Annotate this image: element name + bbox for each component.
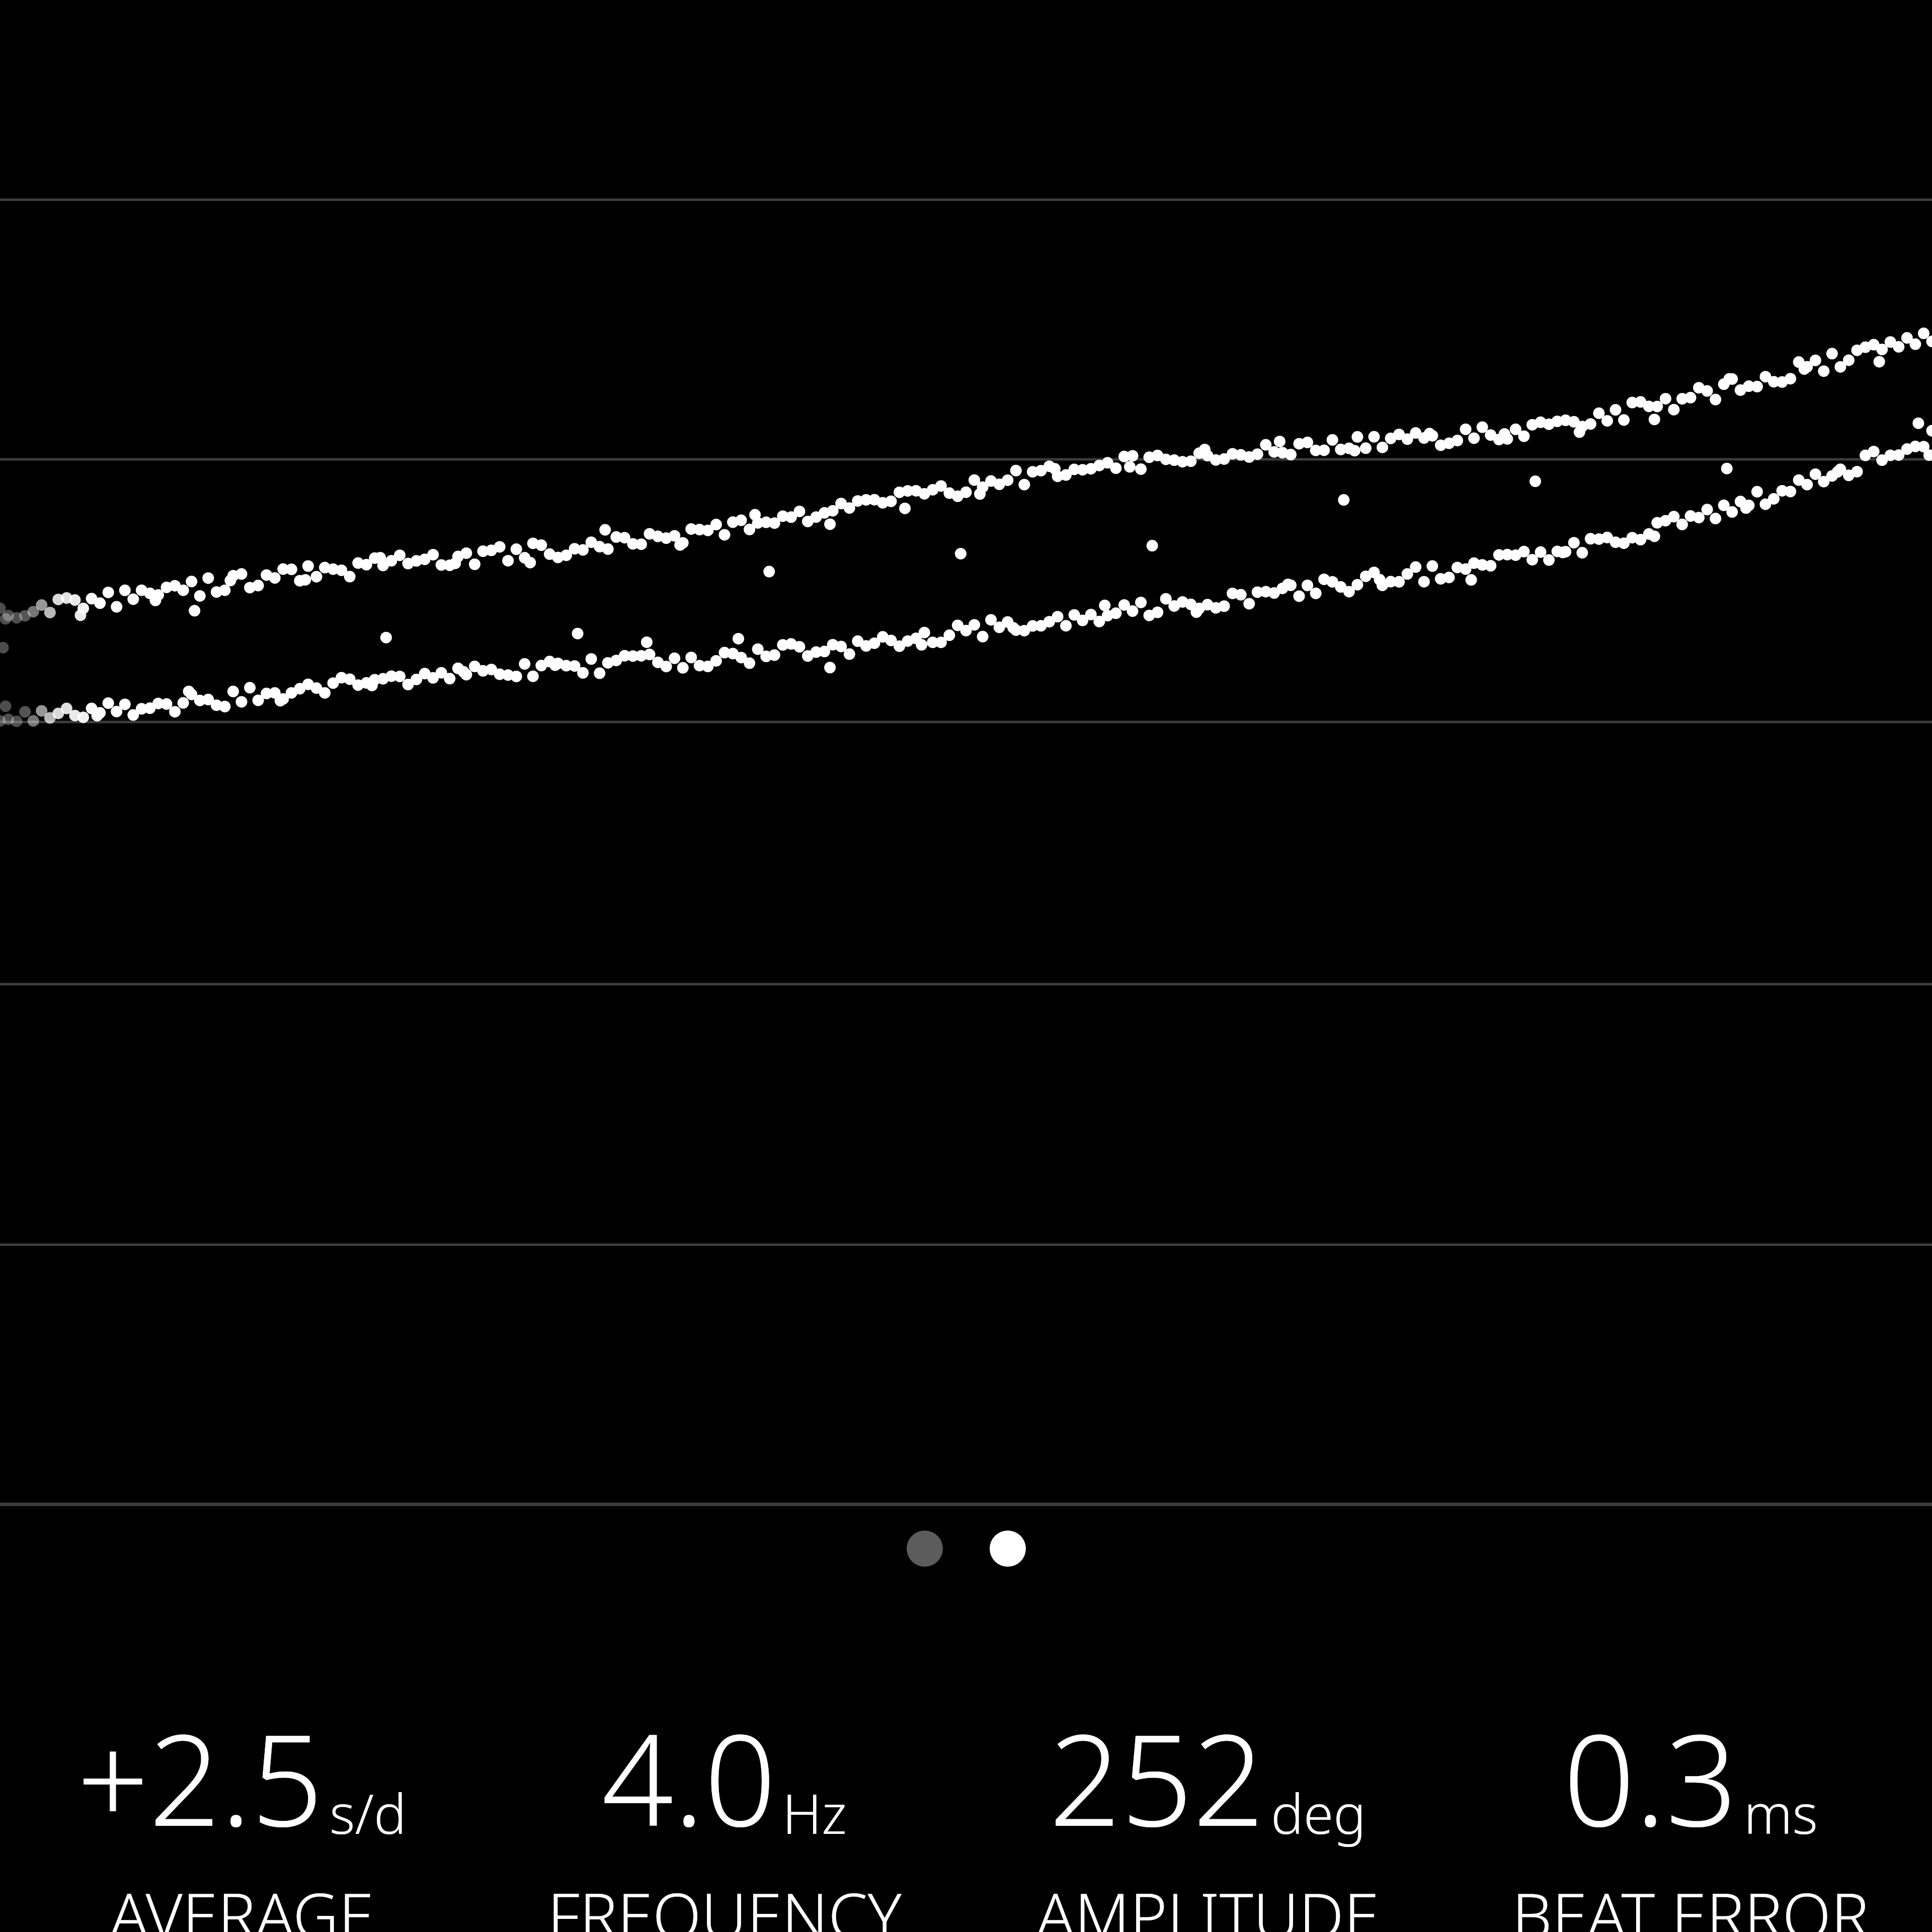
button[interactable]: 252 [966, 1692, 1449, 1932]
staticText: FREQUENCY [547, 1871, 902, 1932]
staticText: AVERAGE [110, 1871, 374, 1932]
staticText: 252 [1049, 1692, 1265, 1863]
staticText: s/d [330, 1776, 407, 1850]
button[interactable]: +2.5 [0, 1692, 483, 1932]
button[interactable]: 4.0 [483, 1692, 966, 1932]
staticText: +2.5 [77, 1692, 324, 1863]
button[interactable]: 0.3 [1449, 1692, 1932, 1932]
button[interactable]: Page 2, selected [990, 1531, 1026, 1567]
staticText: 4.0 [602, 1692, 776, 1863]
staticText: ms [1744, 1776, 1818, 1850]
staticText: BEAT ERROR [1512, 1871, 1869, 1932]
staticText: AMPLITUDE [1036, 1871, 1379, 1932]
staticText: Hz [782, 1776, 847, 1850]
button[interactable]: Page 1 [907, 1531, 943, 1567]
staticText: deg [1271, 1776, 1366, 1850]
staticText: 0.3 [1563, 1692, 1738, 1863]
